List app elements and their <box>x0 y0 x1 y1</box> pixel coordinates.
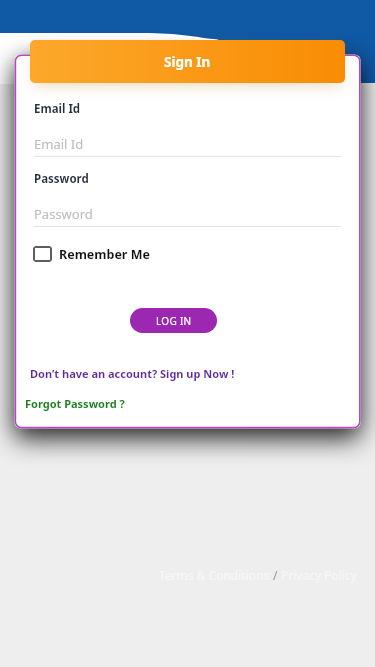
button[interactable]: Don’t have an account? Sign up Now ! <box>30 366 235 381</box>
button[interactable]: Email Id <box>34 135 341 156</box>
staticText: Forgot Password ? <box>25 396 125 411</box>
button[interactable]: Sign In <box>30 40 345 83</box>
button[interactable]: LOG IN <box>130 308 217 333</box>
staticText: Password <box>34 205 93 223</box>
button[interactable]: Remember Me <box>33 243 150 265</box>
staticText: Email Id <box>34 135 84 153</box>
staticText: Password <box>34 171 89 187</box>
button[interactable]: Password <box>34 205 341 226</box>
staticText: LOG IN <box>156 314 192 328</box>
staticText: Sign In <box>164 53 211 71</box>
staticText: Email Id <box>34 101 81 117</box>
staticText: / <box>270 567 281 583</box>
button[interactable]: Forgot Password ? <box>25 396 125 411</box>
staticText: Remember Me <box>59 246 150 263</box>
staticText: Don’t have an account? Sign up Now ! <box>30 366 235 381</box>
